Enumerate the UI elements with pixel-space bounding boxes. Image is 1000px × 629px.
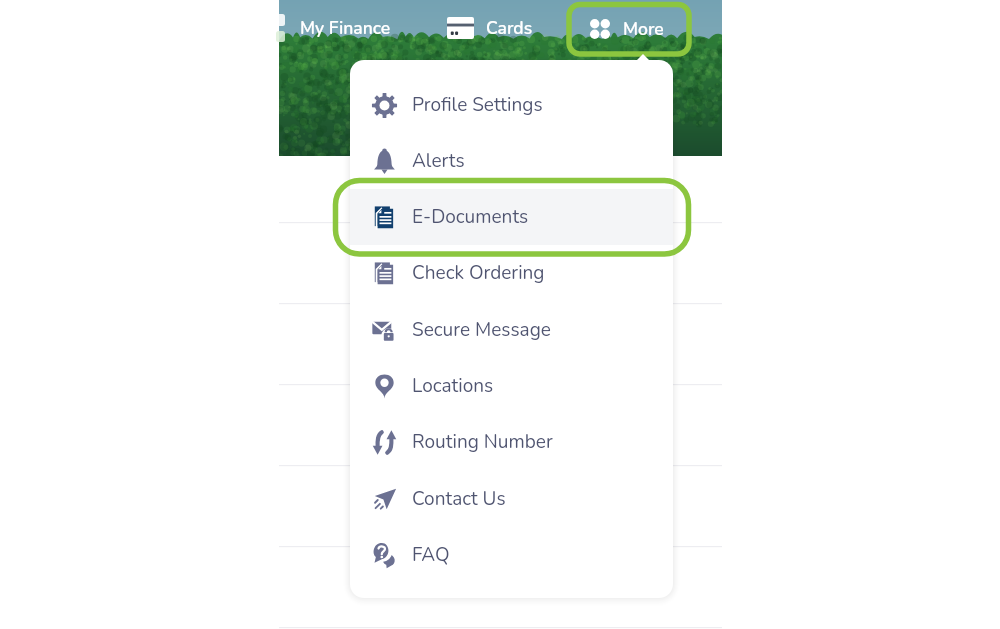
staticText: Routing Number [412, 429, 553, 455]
button[interactable]: E-Documents [350, 189, 673, 245]
staticText: Check Ordering [412, 260, 545, 286]
button[interactable]: Check Ordering [350, 245, 673, 301]
staticText: Contact Us [412, 486, 506, 512]
button[interactable]: Locations [350, 358, 673, 414]
button[interactable]: Profile Settings [350, 77, 673, 133]
staticText: Profile Settings [412, 92, 543, 118]
button[interactable]: Alerts [350, 133, 673, 189]
staticText: More [623, 17, 664, 41]
staticText: Locations [412, 373, 494, 399]
staticText: Secure Message [412, 317, 551, 343]
staticText: FAQ [412, 542, 450, 568]
button[interactable]: More [569, 4, 689, 54]
button[interactable]: Contact Us [350, 471, 673, 527]
button[interactable]: Cards [437, 4, 543, 52]
staticText: E-Documents [412, 204, 529, 230]
staticText: My Finance [300, 16, 391, 40]
button[interactable]: Routing Number [350, 414, 673, 470]
staticText: Cards [486, 16, 533, 40]
button[interactable]: FAQ [350, 527, 673, 583]
button[interactable]: My Finance [289, 4, 402, 52]
button[interactable]: Secure Message [350, 302, 673, 358]
staticText: Alerts [412, 148, 465, 174]
